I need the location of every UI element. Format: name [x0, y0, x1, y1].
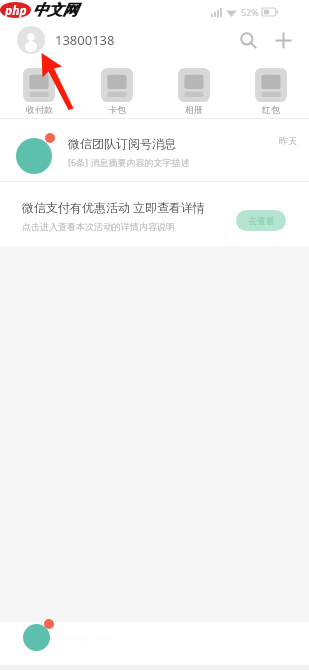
staticText: 相册 [185, 104, 203, 115]
staticText: 昨天 [279, 135, 297, 146]
button[interactable]: Search [236, 28, 260, 52]
staticText: 13800138 [55, 31, 115, 49]
staticText: 52% [241, 6, 259, 18]
button[interactable]: 群聊消息 [0, 622, 309, 660]
staticText: 中文网 [33, 1, 78, 20]
button[interactable]: 微信支付有优惠活动 立即查看详情 [0, 182, 309, 246]
staticText: [6条] 消息摘要内容的文字描述 [68, 156, 190, 168]
staticText: 收付款 [26, 104, 53, 115]
button[interactable]: 去查看 [236, 210, 286, 231]
button[interactable]: 相册 [155, 58, 232, 118]
staticText: 微信团队订阅号消息 [68, 136, 176, 151]
staticText: php [5, 2, 27, 18]
button[interactable]: 微信团队订阅号消息 [0, 119, 309, 181]
button[interactable]: 卡包 [78, 58, 155, 118]
staticText: 点击进入查看本次活动的详情内容说明 [22, 221, 175, 232]
staticText: 红包 [262, 104, 280, 115]
button[interactable]: Profile [17, 26, 45, 54]
staticText: 去查看 [248, 215, 275, 226]
staticText: 中文网 [32, 1, 77, 20]
staticText: 卡包 [108, 104, 126, 115]
button[interactable]: 收付款 [0, 58, 78, 118]
staticText: 微信支付有优惠活动 立即查看详情 [22, 199, 206, 215]
button[interactable]: Add [271, 28, 295, 52]
button[interactable]: 红包 [232, 58, 309, 118]
